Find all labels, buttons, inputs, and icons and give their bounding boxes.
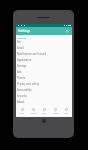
button[interactable]: Media xyxy=(50,106,61,117)
staticText: Media xyxy=(53,112,59,115)
staticText: Calls xyxy=(42,112,47,115)
staticText: Email xyxy=(17,46,24,50)
staticText: Notifications and sound xyxy=(17,52,47,56)
button[interactable]: Email xyxy=(16,45,72,51)
button[interactable]: Security xyxy=(16,93,72,99)
button[interactable]: Storage xyxy=(16,63,72,69)
button[interactable]: Calls xyxy=(39,106,50,117)
button[interactable]: Accessibility xyxy=(16,87,72,93)
button[interactable]: Privacy and safety xyxy=(16,81,72,87)
staticText: More xyxy=(64,112,69,115)
staticText: Status xyxy=(31,112,37,115)
button[interactable]: Chats xyxy=(16,106,28,117)
staticText: Bio xyxy=(17,40,21,44)
staticText: General xyxy=(17,36,26,39)
button[interactable]: Status xyxy=(28,106,39,117)
button[interactable]: Notifications and sound xyxy=(16,51,72,57)
button[interactable]: Search xyxy=(65,29,70,34)
button[interactable]: About xyxy=(16,99,72,105)
staticText: Storage xyxy=(17,64,27,68)
staticText: Security xyxy=(17,94,27,98)
button[interactable]: Ads xyxy=(16,69,72,75)
staticText: Accessibility xyxy=(17,88,32,92)
staticText: Ads xyxy=(17,70,22,74)
button[interactable]: Bio xyxy=(16,39,72,45)
staticText: Settings xyxy=(18,29,31,33)
staticText: Chats xyxy=(19,112,25,115)
staticText: About xyxy=(17,100,25,104)
staticText: Appearance xyxy=(17,58,32,62)
staticText: Theme xyxy=(17,76,26,80)
staticText: Privacy and safety xyxy=(17,82,39,86)
button[interactable]: More xyxy=(61,106,72,117)
button[interactable]: Appearance xyxy=(16,57,72,63)
button[interactable]: Theme xyxy=(16,75,72,81)
